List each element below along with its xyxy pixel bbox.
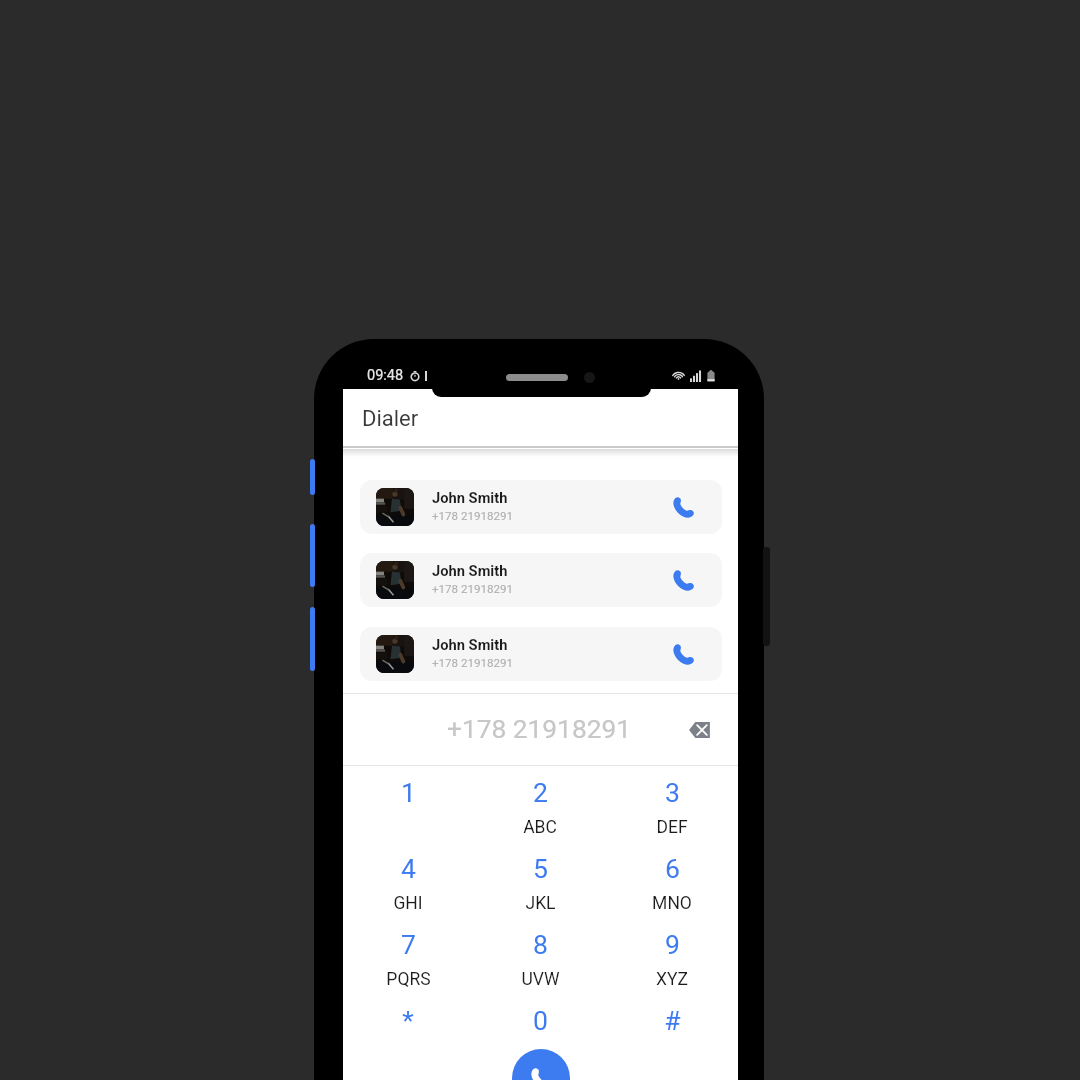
- button[interactable]: Call John Smith: [670, 494, 697, 521]
- button[interactable]: Call John Smith: [670, 567, 697, 594]
- button[interactable]: John Smith: [360, 480, 722, 534]
- staticText: +178 21918291: [432, 656, 514, 670]
- staticText: 0: [533, 1005, 548, 1036]
- staticText: 8: [533, 929, 548, 960]
- staticText: 4: [401, 853, 416, 884]
- button[interactable]: 7: [348, 929, 468, 999]
- button[interactable]: John Smith: [360, 627, 722, 681]
- button[interactable]: Call John Smith: [670, 641, 697, 668]
- button[interactable]: 5: [480, 853, 600, 923]
- button[interactable]: *: [348, 1005, 468, 1075]
- button[interactable]: John Smith: [360, 553, 722, 607]
- staticText: +178 21918291: [447, 714, 632, 745]
- staticText: JKL: [525, 893, 556, 914]
- staticText: 7: [401, 929, 416, 960]
- button[interactable]: 4: [348, 853, 468, 923]
- staticText: John Smith: [432, 562, 508, 579]
- button[interactable]: 3: [612, 777, 732, 847]
- staticText: 1: [401, 777, 416, 808]
- button[interactable]: Backspace: [687, 717, 713, 743]
- staticText: ABC: [523, 817, 557, 838]
- staticText: *: [402, 1005, 414, 1036]
- button[interactable]: 1: [348, 777, 468, 847]
- staticText: John Smith: [432, 636, 508, 653]
- staticText: John Smith: [432, 489, 508, 506]
- staticText: +178 21918291: [432, 582, 514, 596]
- staticText: 6: [665, 853, 680, 884]
- staticText: +178 21918291: [432, 509, 514, 523]
- staticText: MNO: [652, 893, 692, 914]
- staticText: 5: [533, 853, 548, 884]
- staticText: #: [664, 1005, 681, 1036]
- staticText: DEF: [656, 817, 688, 838]
- staticText: 2: [533, 777, 548, 808]
- staticText: 3: [665, 777, 680, 808]
- staticText: 09:48: [367, 367, 404, 384]
- staticText: 9: [665, 929, 680, 960]
- button[interactable]: 9: [612, 929, 732, 999]
- staticText: Dialer: [362, 406, 419, 432]
- button[interactable]: 2: [480, 777, 600, 847]
- button[interactable]: 0: [480, 1005, 600, 1075]
- button[interactable]: Power: [310, 607, 315, 671]
- staticText: XYZ: [656, 969, 688, 990]
- staticText: GHI: [393, 893, 423, 914]
- staticText: PQRS: [386, 969, 431, 990]
- staticText: UVW: [521, 969, 560, 990]
- button[interactable]: Volume down: [310, 524, 315, 587]
- button[interactable]: Call: [512, 1049, 570, 1080]
- button[interactable]: #: [612, 1005, 732, 1075]
- button[interactable]: 6: [612, 853, 732, 923]
- button[interactable]: Volume up: [310, 459, 315, 495]
- button[interactable]: 8: [480, 929, 600, 999]
